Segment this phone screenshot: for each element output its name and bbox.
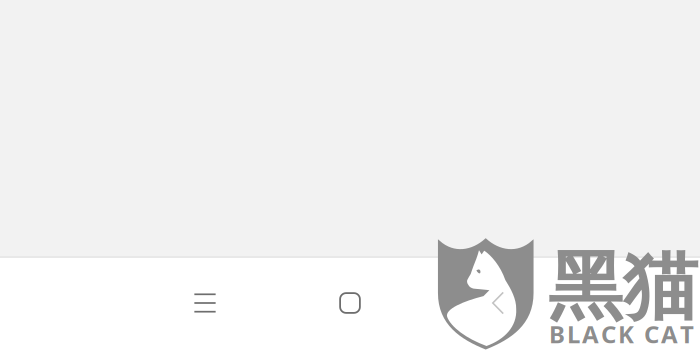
button[interactable]: Recent apps (163, 261, 247, 345)
staticText: 黑猫 (548, 241, 698, 333)
staticText: B L A C K C A T (549, 318, 694, 350)
button[interactable]: Home (308, 261, 392, 345)
button[interactable]: Back (456, 261, 540, 345)
